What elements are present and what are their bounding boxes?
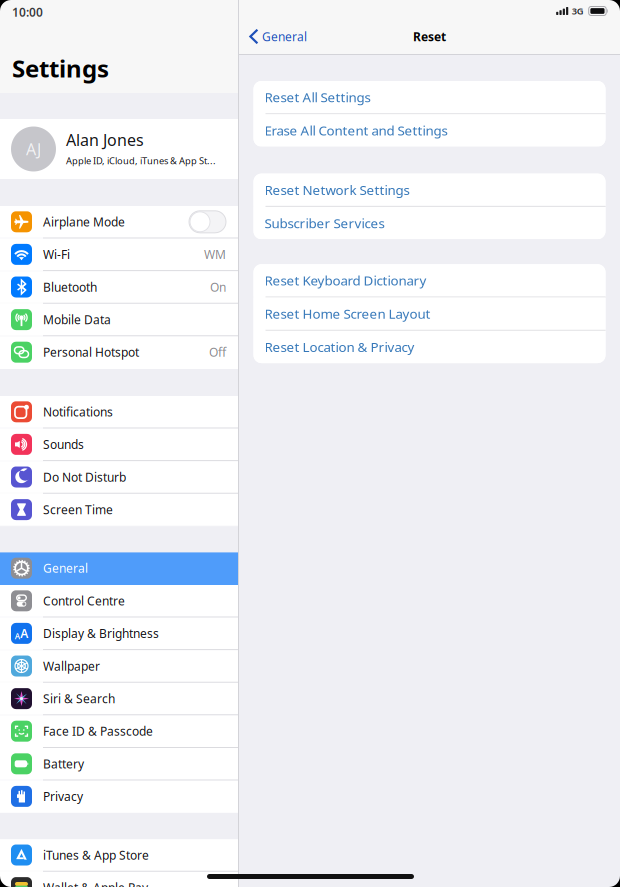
button[interactable]: Reset Location & Privacy — [253, 331, 605, 363]
button[interactable]: Subscriber Services — [253, 207, 605, 239]
button[interactable]: iTunes & App Store — [0, 839, 238, 871]
button[interactable]: Screen Time — [0, 494, 238, 525]
staticText: Battery — [43, 756, 84, 772]
staticText: iTunes & App Store — [43, 847, 149, 863]
staticText: Siri & Search — [43, 691, 115, 706]
staticText: Screen Time — [43, 502, 113, 517]
staticText: WM — [204, 246, 226, 262]
staticText: Reset Location & Privacy — [264, 338, 414, 356]
button[interactable]: Privacy — [0, 781, 238, 812]
button[interactable]: Mobile Data — [0, 304, 238, 335]
staticText: Settings — [12, 52, 109, 84]
button[interactable]: Erase All Content and Settings — [253, 114, 605, 147]
staticText: Bluetooth — [43, 279, 97, 295]
staticText: Notifications — [43, 404, 113, 420]
staticText: Wallet & Apple Pay — [43, 880, 148, 887]
button[interactable]: Airplane Mode — [0, 206, 238, 238]
button[interactable]: Reset Home Screen Layout — [253, 297, 605, 330]
staticText: Wallpaper — [43, 658, 100, 674]
button[interactable]: Personal Hotspot — [0, 336, 238, 368]
staticText: General — [262, 28, 307, 44]
button[interactable]: Control Centre — [0, 585, 238, 617]
button[interactable]: Wallet & Apple Pay — [0, 872, 238, 887]
staticText: Do Not Disturb — [43, 469, 126, 485]
staticText: Mobile Data — [43, 312, 111, 327]
staticText: Reset Keyboard Dictionary — [264, 271, 426, 289]
button[interactable]: AJ — [0, 119, 238, 179]
staticText: Off — [209, 344, 226, 360]
button[interactable]: Wi-Fi — [0, 239, 238, 270]
staticText: Airplane Mode — [43, 214, 125, 230]
staticText: Privacy — [43, 788, 83, 804]
button[interactable]: Reset All Settings — [253, 81, 605, 113]
button[interactable]: Reset Network Settings — [253, 174, 605, 206]
button[interactable]: Wallpaper — [0, 650, 238, 682]
button[interactable]: Notifications — [0, 396, 238, 428]
staticText: Subscriber Services — [264, 214, 384, 232]
button[interactable]: Siri & Search — [0, 683, 238, 714]
button[interactable]: Reset Keyboard Dictionary — [253, 264, 605, 296]
staticText: 10:00 — [12, 4, 43, 20]
button[interactable]: Do Not Disturb — [0, 461, 238, 493]
button[interactable]: Battery — [0, 748, 238, 780]
staticText: On — [210, 279, 226, 295]
staticText: Erase All Content and Settings — [264, 122, 447, 139]
staticText: Sounds — [43, 436, 84, 452]
staticText: Apple ID, iCloud, iTunes & App St... — [66, 154, 216, 167]
button[interactable]: Sounds — [0, 429, 238, 460]
staticText: Reset Network Settings — [264, 181, 409, 199]
staticText: AJ — [26, 138, 41, 160]
button[interactable]: Bluetooth — [0, 271, 238, 303]
staticText: Display & Brightness — [43, 625, 159, 641]
staticText: Reset Home Screen Layout — [264, 305, 430, 322]
staticText: A — [15, 631, 20, 641]
staticText: Wi-Fi — [43, 246, 70, 262]
button[interactable]: Face ID & Passcode — [0, 715, 238, 747]
staticText: Control Centre — [43, 593, 125, 609]
staticText: General — [43, 560, 88, 576]
button[interactable]: General — [0, 552, 238, 584]
staticText: Reset All Settings — [264, 88, 370, 106]
button[interactable]: General — [239, 24, 307, 48]
staticText: Alan Jones — [66, 129, 144, 150]
staticText: Face ID & Passcode — [43, 723, 153, 739]
staticText: 3G — [572, 5, 584, 17]
staticText: Reset — [413, 28, 446, 44]
button[interactable]: A — [0, 618, 238, 649]
staticText: Personal Hotspot — [43, 344, 139, 360]
staticText: A — [20, 625, 28, 641]
